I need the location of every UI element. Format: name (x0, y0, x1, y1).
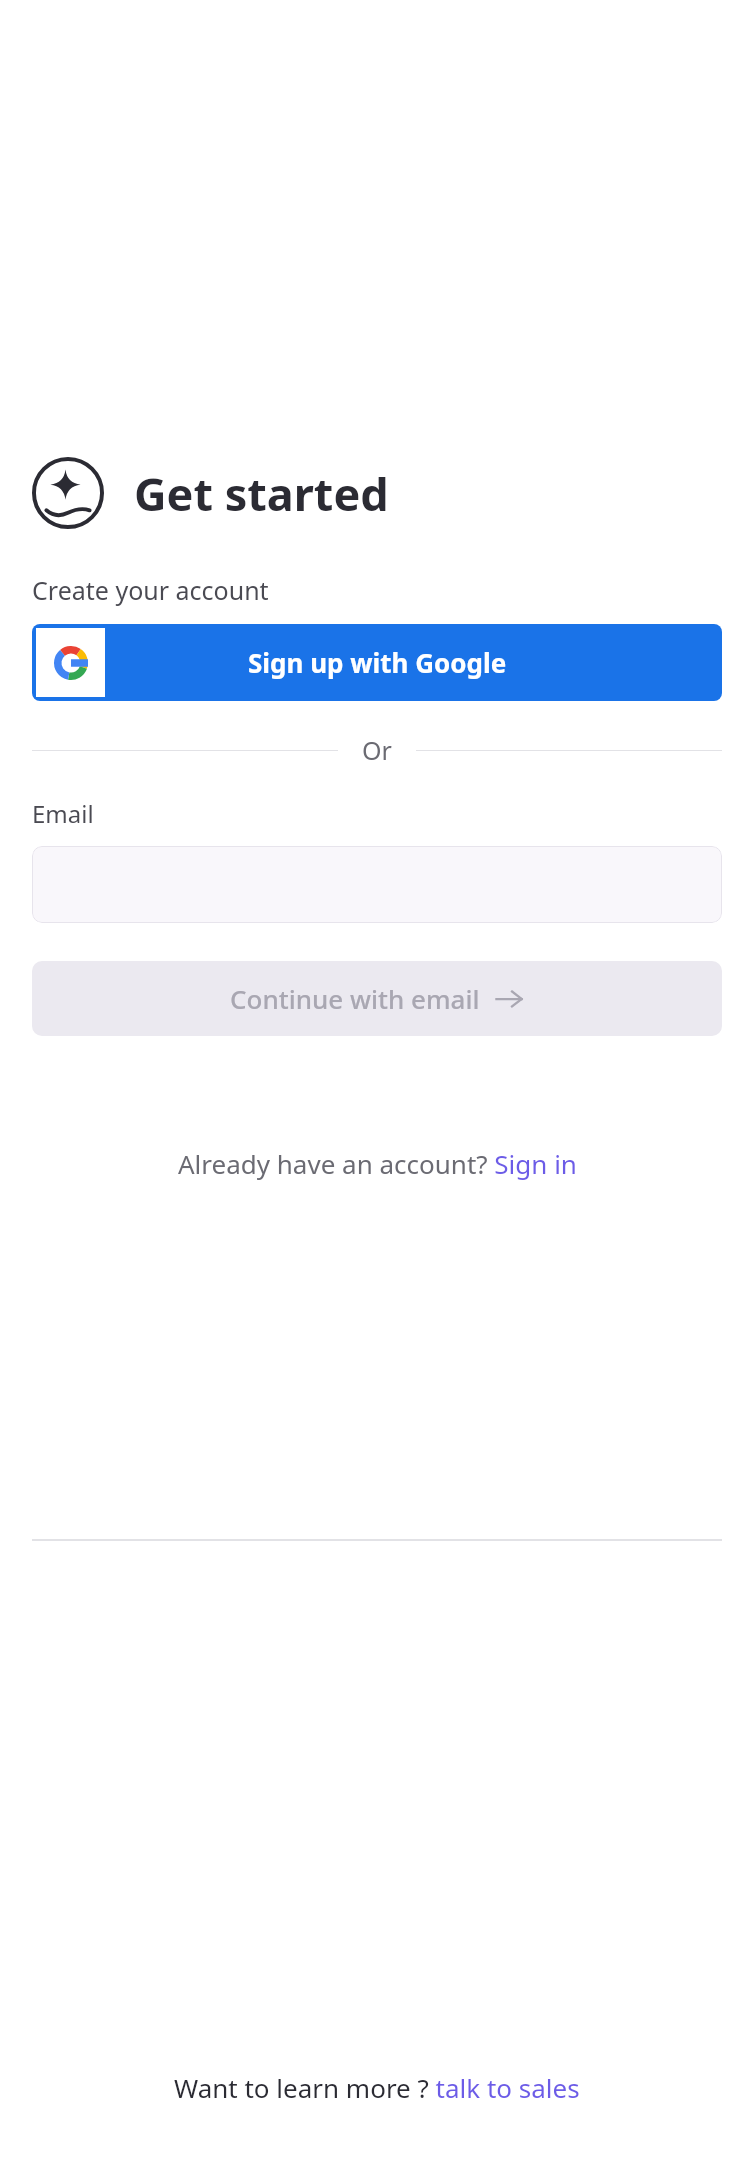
staticText: Get started (134, 463, 389, 524)
staticText: Email (32, 797, 94, 830)
button[interactable]: Already have an account? Sign in (178, 1146, 577, 1181)
staticText: Sign up with Google (248, 645, 507, 680)
staticText: Already have an account? Sign in (178, 1146, 577, 1181)
button[interactable]: Want to learn more ? talk to sales (174, 2070, 580, 2105)
button[interactable] (32, 846, 722, 923)
button[interactable]: Continue with email (32, 961, 722, 1036)
staticText: Create your account (32, 573, 269, 607)
button[interactable]: Sign up with Google (32, 624, 722, 701)
staticText: Continue with email (230, 981, 480, 1016)
staticText: Or (362, 733, 392, 767)
staticText: Want to learn more ? talk to sales (174, 2070, 580, 2105)
